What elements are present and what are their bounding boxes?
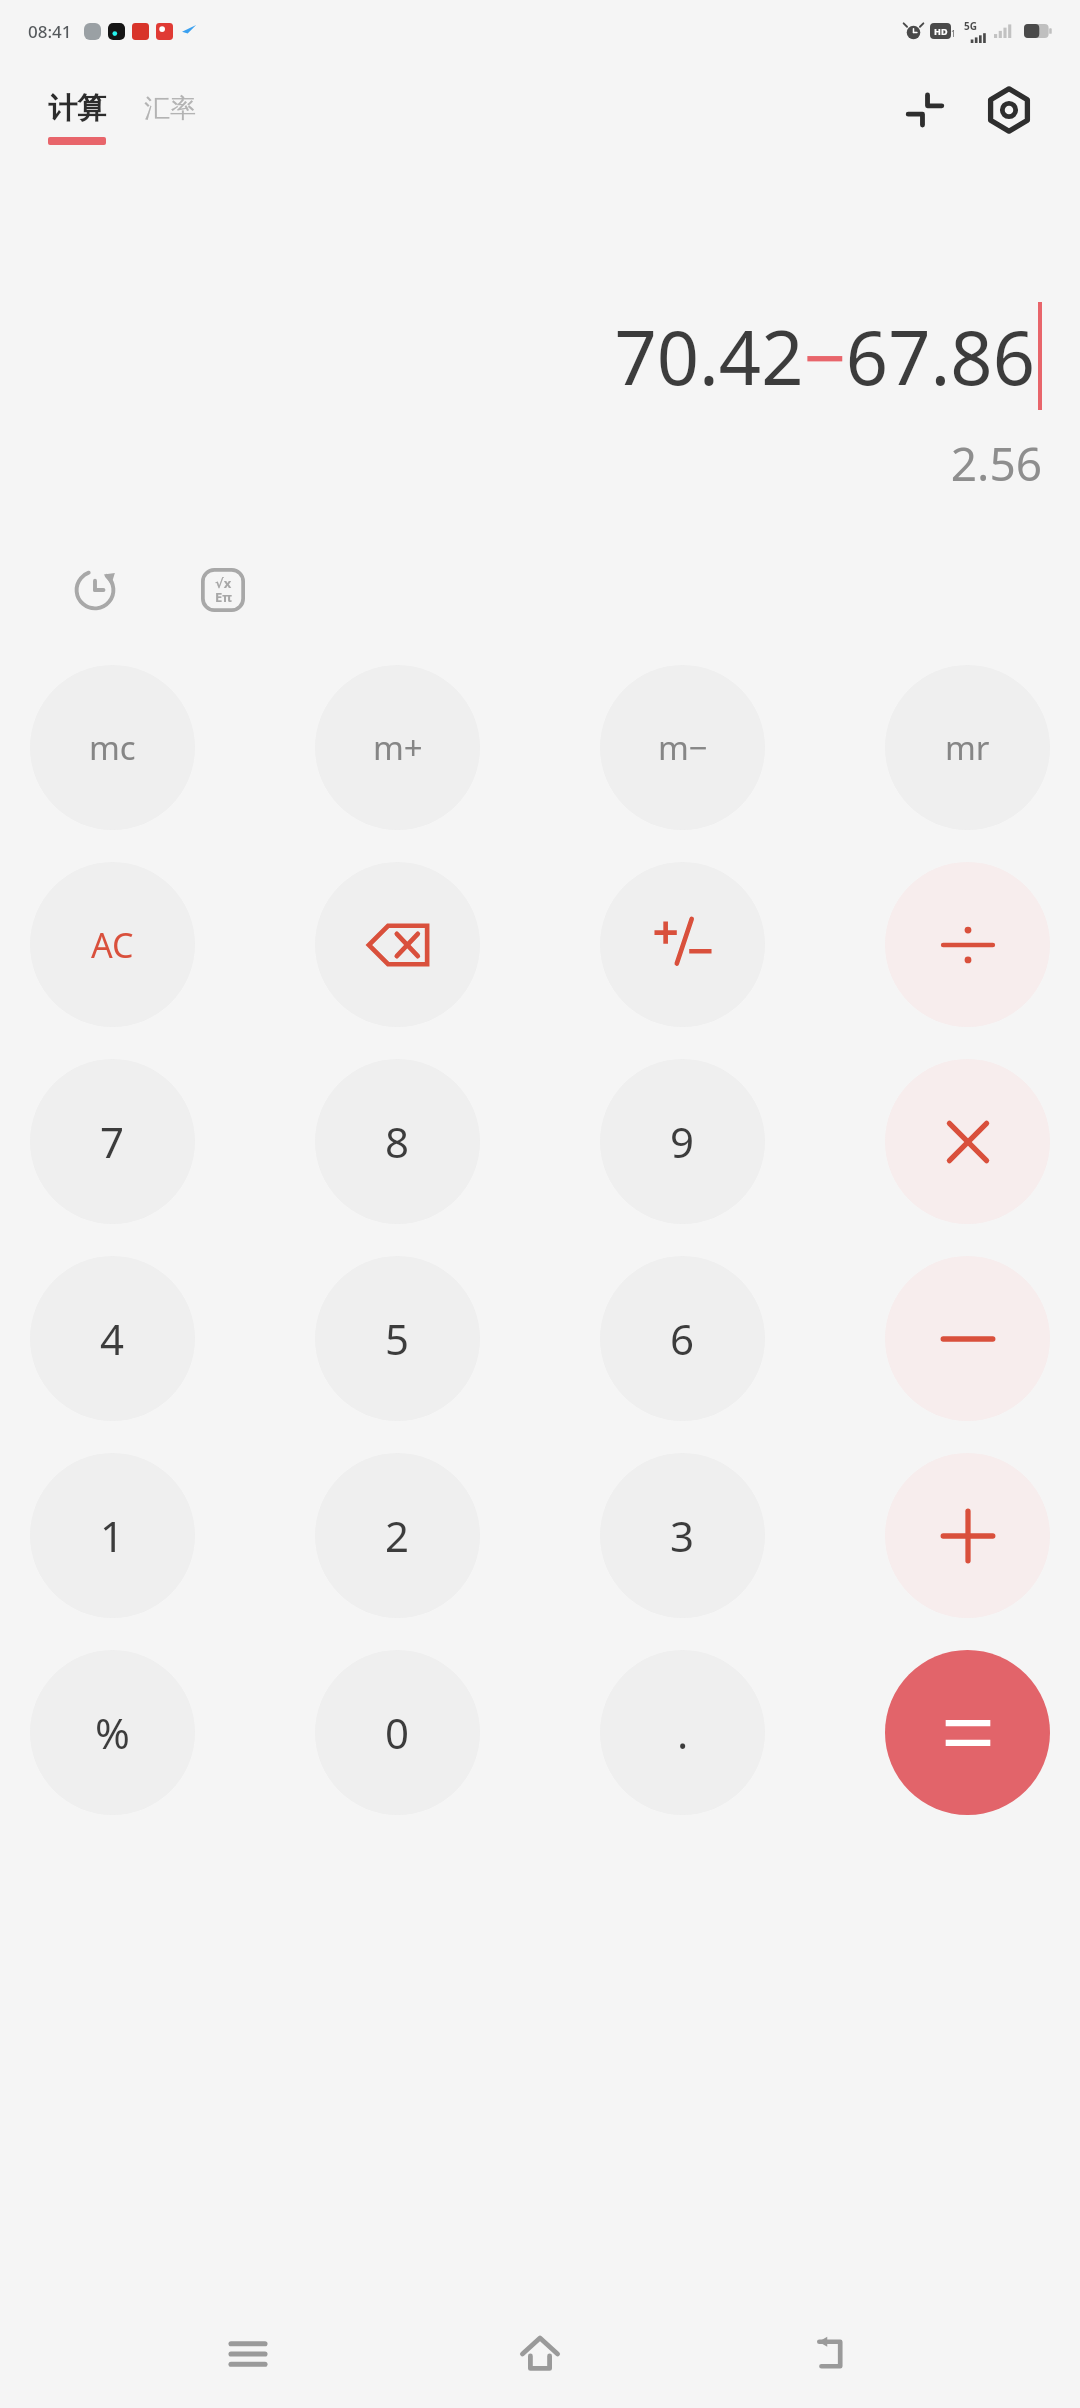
button[interactable]: AC [30,862,195,1027]
button[interactable]: Minus [885,1256,1050,1421]
staticText: 7 [100,1113,125,1170]
staticText: m− [658,725,708,770]
staticText: . [677,1704,689,1761]
button[interactable]: 2 [315,1453,480,1618]
staticText: 1 [951,28,956,39]
button[interactable]: Backspace [315,862,480,1027]
button[interactable]: mr [885,665,1050,830]
staticText: 3 [670,1507,695,1564]
button[interactable]: 汇率 [144,92,196,143]
button[interactable]: Scientific [188,555,258,625]
staticText: mc [89,725,136,770]
button[interactable]: Back [788,2309,878,2399]
staticText: m+ [373,725,423,770]
button[interactable]: Plus [885,1453,1050,1618]
button[interactable]: Multiply [885,1059,1050,1224]
staticText: 汇率 [144,92,196,125]
staticText: HD [934,25,948,37]
staticText: Eπ [215,588,232,606]
button[interactable]: mc [30,665,195,830]
staticText: % [95,1704,130,1761]
staticText: 2.56 [38,432,1042,495]
button[interactable]: m− [600,665,765,830]
staticText: √x [215,574,232,592]
button[interactable]: Recent apps [203,2309,293,2399]
button[interactable]: Divide [885,862,1050,1027]
staticText: mr [945,725,990,770]
button[interactable]: History [60,555,130,625]
staticText: 0 [385,1704,410,1761]
staticText: 08:41 [28,20,72,43]
staticText: 计算 [48,90,106,127]
button[interactable]: Plus minus [600,862,765,1027]
button[interactable]: 3 [600,1453,765,1618]
staticText: 5G [964,19,977,33]
button[interactable]: m+ [315,665,480,830]
button[interactable]: Home [495,2309,585,2399]
staticText: 6 [670,1310,695,1367]
button[interactable]: 9 [600,1059,765,1224]
button[interactable]: 1 [30,1453,195,1618]
button[interactable]: . [600,1650,765,1815]
staticText: 1 [100,1507,125,1564]
staticText: 4 [100,1310,125,1367]
staticText: 70.42−67.86 [614,306,1035,407]
button[interactable]: 6 [600,1256,765,1421]
button[interactable]: 7 [30,1059,195,1224]
staticText: AC [91,922,134,968]
staticText: 9 [670,1113,695,1170]
button[interactable]: 5 [315,1256,480,1421]
staticText: 5 [385,1310,410,1367]
staticText: 8 [385,1113,410,1170]
button[interactable]: 4 [30,1256,195,1421]
staticText: 2 [385,1507,410,1564]
button[interactable]: 8 [315,1059,480,1224]
button[interactable]: Settings [978,79,1040,141]
button[interactable]: Collapse [894,79,956,141]
button[interactable]: 计算 [48,90,106,145]
button[interactable]: % [30,1650,195,1815]
button[interactable]: 0 [315,1650,480,1815]
button[interactable]: Equals [885,1650,1050,1815]
